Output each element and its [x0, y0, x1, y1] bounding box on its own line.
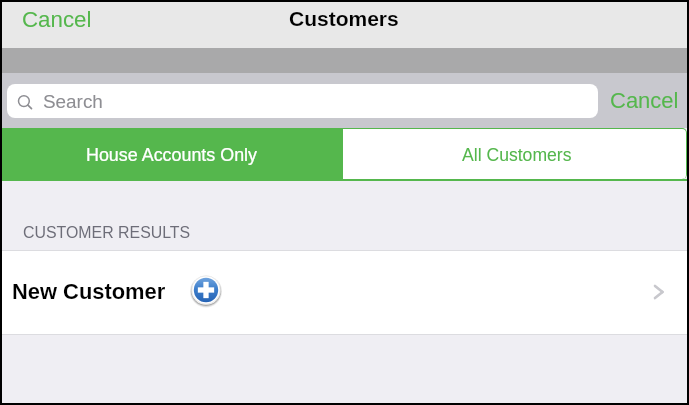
staticText: Cancel	[22, 7, 92, 32]
button[interactable]: Search	[7, 84, 598, 118]
button[interactable]: House Accounts Only	[2, 128, 343, 179]
button[interactable]: All Customers	[343, 129, 686, 179]
button[interactable]: Cancel	[598, 73, 687, 128]
staticText: Search	[43, 91, 103, 112]
staticText: Customers	[289, 7, 399, 30]
staticText: New Customer	[12, 279, 166, 303]
staticText: All Customers	[462, 145, 572, 165]
staticText: CUSTOMER RESULTS	[23, 224, 191, 242]
button[interactable]: Add new customer	[189, 273, 223, 307]
staticText: Cancel	[610, 88, 679, 113]
button[interactable]: Cancel	[2, 3, 113, 38]
button[interactable]: New Customer	[2, 251, 687, 334]
staticText: House Accounts Only	[86, 145, 258, 165]
button[interactable]: Open new customer	[651, 284, 667, 300]
